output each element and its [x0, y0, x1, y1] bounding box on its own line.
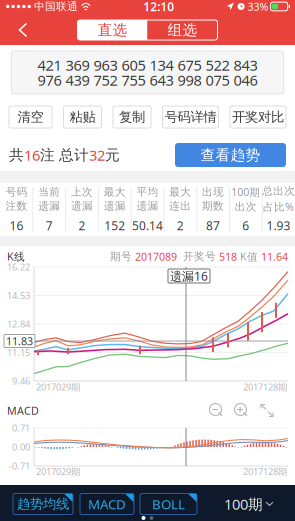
staticText: 遗漏	[104, 199, 126, 213]
staticText: 2017089	[135, 249, 177, 264]
staticText: 12:10	[143, 0, 174, 14]
staticText: 976 439 752 755 643 998 075 046	[37, 70, 257, 90]
staticText: 2017029期	[36, 465, 80, 478]
staticText: 100期	[231, 185, 260, 199]
staticText: 2017128期	[243, 381, 287, 393]
staticText: 11.83	[6, 334, 33, 348]
button[interactable]: 清空	[9, 106, 52, 128]
staticText: 16	[24, 145, 40, 165]
staticText: 33%	[248, 0, 269, 14]
staticText: 11.15	[7, 346, 30, 359]
button[interactable]: 号码详情	[162, 106, 218, 128]
staticText: 7	[46, 217, 53, 233]
staticText: 0.71	[12, 422, 30, 434]
button[interactable]: Full screen	[249, 403, 274, 417]
staticText: 当前	[38, 185, 60, 198]
staticText: 平均	[136, 185, 158, 198]
staticText: 查看趋势	[200, 146, 260, 164]
staticText: BOLL	[152, 495, 185, 513]
button[interactable]: 粘贴	[63, 106, 101, 128]
button[interactable]: Back	[7, 15, 39, 44]
staticText: 16.22	[7, 261, 30, 273]
staticText: 组选	[167, 21, 197, 39]
button[interactable]: 复制	[113, 106, 151, 128]
button[interactable]: 组选	[147, 20, 217, 40]
staticText: 0.00	[12, 441, 30, 453]
staticText: 元	[105, 146, 120, 164]
staticText: 152	[104, 217, 125, 233]
staticText: 2	[78, 217, 85, 233]
staticText: 87	[206, 217, 220, 233]
button[interactable]: Zoom in	[224, 403, 249, 418]
staticText: 上次	[71, 185, 93, 198]
staticText: 11.64	[261, 249, 288, 264]
staticText: MACD	[88, 495, 126, 513]
staticText: 复制	[119, 109, 145, 125]
staticText: 遗漏16	[170, 268, 208, 284]
staticText: 总出次	[262, 184, 295, 198]
staticText: MACD	[7, 403, 39, 418]
staticText: 号码详情	[164, 109, 216, 125]
button[interactable]: BOLL	[140, 493, 197, 514]
staticText: 518	[219, 249, 237, 264]
staticText: K线	[7, 249, 25, 264]
staticText: 遗漏	[38, 199, 60, 213]
staticText: K值	[237, 249, 261, 264]
staticText: 1.93	[267, 217, 291, 233]
button[interactable]: 直选	[77, 20, 147, 40]
staticText: 14.53	[7, 289, 30, 302]
button[interactable]: Zoom out	[209, 403, 224, 418]
staticText: 清空	[17, 109, 43, 125]
staticText: 号码	[5, 185, 27, 198]
staticText: 共	[9, 146, 24, 164]
button[interactable]: 100期	[218, 493, 279, 514]
staticText: 2	[177, 217, 184, 233]
staticText: 开奖对比	[232, 109, 284, 125]
staticText: 最大	[169, 185, 191, 198]
staticText: 开奖号	[177, 250, 219, 263]
staticText: 16	[9, 217, 23, 233]
staticText: 粘贴	[69, 109, 95, 125]
staticText: 2017128期	[243, 465, 287, 478]
staticText: 出次	[235, 200, 257, 213]
staticText: 趋势均线	[17, 496, 69, 512]
staticText: 中国联通	[34, 0, 78, 13]
staticText: 32	[89, 145, 105, 165]
staticText: 6	[242, 217, 249, 233]
staticText: 注数	[5, 199, 27, 213]
staticText: 50.14	[132, 217, 163, 233]
staticText: 直选	[97, 21, 127, 39]
staticText: 12.84	[7, 318, 30, 330]
button[interactable]: 趋势均线	[13, 493, 73, 514]
staticText: 2017029期	[36, 381, 80, 393]
staticText: 出现	[202, 185, 224, 198]
staticText: 连出	[169, 199, 191, 213]
staticText: 期号	[110, 250, 135, 263]
staticText: 期数	[202, 199, 224, 213]
button[interactable]: 查看趋势	[175, 143, 286, 167]
staticText: -0.71	[9, 460, 30, 472]
staticText: 遗漏	[71, 199, 93, 213]
button[interactable]: 开奖对比	[230, 106, 286, 128]
staticText: 注 总计	[40, 146, 89, 164]
staticText: 最大	[104, 185, 126, 198]
staticText: 占比%	[263, 199, 294, 214]
staticText: 421 369 963 605 134 675 522 843	[37, 55, 257, 75]
staticText: 100期	[224, 494, 263, 514]
button[interactable]: MACD	[80, 493, 134, 514]
staticText: 9.46	[12, 375, 30, 387]
staticText: 遗漏	[136, 199, 158, 213]
